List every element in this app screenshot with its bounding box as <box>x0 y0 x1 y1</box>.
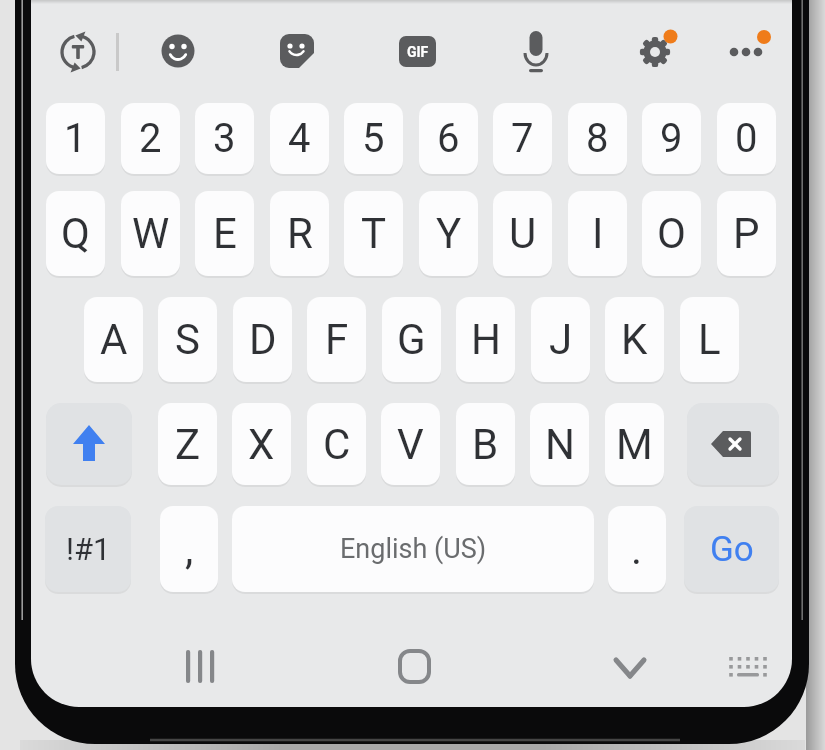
staticText: 1 <box>64 115 87 162</box>
button[interactable] <box>636 30 680 74</box>
button[interactable]: GIF <box>399 36 436 67</box>
staticText: 4 <box>288 115 311 162</box>
button[interactable]: !#1 <box>45 506 131 592</box>
button[interactable]: X <box>232 403 291 485</box>
staticText: GIF <box>407 44 429 60</box>
staticText: M <box>616 420 653 469</box>
button[interactable] <box>396 646 434 686</box>
staticText: G <box>397 315 426 364</box>
button[interactable]: 8 <box>568 103 627 174</box>
button[interactable] <box>687 403 779 485</box>
staticText: 8 <box>586 115 609 162</box>
button[interactable] <box>159 32 197 70</box>
staticText: W <box>132 209 170 258</box>
button[interactable]: . <box>608 506 666 592</box>
staticText: . <box>631 525 643 574</box>
button[interactable]: Q <box>46 191 105 276</box>
staticText: 2 <box>139 115 162 162</box>
button[interactable] <box>56 29 100 75</box>
staticText: B <box>472 420 499 469</box>
button[interactable]: P <box>717 191 776 276</box>
button[interactable] <box>46 403 132 485</box>
button[interactable]: Z <box>158 403 217 485</box>
staticText: V <box>397 420 424 469</box>
button[interactable]: I <box>568 191 627 276</box>
button[interactable]: N <box>530 403 589 485</box>
staticText: J <box>549 315 573 364</box>
button[interactable]: C <box>307 403 366 485</box>
staticText: 7 <box>511 115 534 162</box>
button[interactable]: J <box>531 297 590 382</box>
button[interactable]: K <box>605 297 664 382</box>
staticText: I <box>592 209 604 258</box>
button[interactable]: 2 <box>121 103 180 174</box>
staticText: P <box>733 209 760 258</box>
staticText: F <box>325 315 349 364</box>
staticText: Q <box>61 209 90 258</box>
button[interactable] <box>727 652 769 684</box>
staticText: 0 <box>735 115 758 162</box>
button[interactable] <box>724 28 774 74</box>
button[interactable]: F <box>307 297 366 382</box>
staticText: U <box>509 209 537 258</box>
staticText: C <box>323 420 351 469</box>
button[interactable]: E <box>195 191 254 276</box>
button[interactable]: 7 <box>493 103 552 174</box>
button[interactable]: , <box>160 506 218 592</box>
button[interactable]: B <box>456 403 515 485</box>
staticText: L <box>698 315 721 364</box>
staticText: Go <box>710 529 754 570</box>
button[interactable]: R <box>270 191 329 276</box>
button[interactable]: T <box>344 191 403 276</box>
staticText: S <box>175 315 200 364</box>
button[interactable]: 6 <box>419 103 478 174</box>
staticText: X <box>248 420 275 469</box>
button[interactable] <box>280 34 314 68</box>
button[interactable]: O <box>642 191 701 276</box>
button[interactable]: 5 <box>344 103 403 174</box>
button[interactable]: 3 <box>195 103 254 174</box>
button[interactable]: U <box>493 191 552 276</box>
button[interactable]: 1 <box>46 103 105 174</box>
staticText: !#1 <box>66 531 111 567</box>
staticText: English (US) <box>340 533 487 565</box>
button[interactable]: V <box>381 403 440 485</box>
staticText: 9 <box>660 115 683 162</box>
button[interactable] <box>180 644 222 688</box>
staticText: 3 <box>213 115 236 162</box>
staticText: H <box>471 315 501 364</box>
button[interactable]: H <box>456 297 515 382</box>
button[interactable]: Y <box>419 191 478 276</box>
button[interactable]: English (US) <box>232 506 594 592</box>
button[interactable]: L <box>680 297 739 382</box>
staticText: O <box>657 209 686 258</box>
button[interactable]: 9 <box>642 103 701 174</box>
staticText: Y <box>436 209 462 258</box>
button[interactable]: S <box>158 297 217 382</box>
staticText: 5 <box>362 115 385 162</box>
button[interactable]: 0 <box>717 103 776 174</box>
staticText: Z <box>175 420 201 469</box>
staticText: R <box>287 209 313 258</box>
staticText: E <box>213 209 237 258</box>
button[interactable]: D <box>233 297 292 382</box>
button[interactable]: A <box>84 297 143 382</box>
staticText: K <box>621 315 648 364</box>
button[interactable]: W <box>121 191 180 276</box>
staticText: A <box>100 315 128 364</box>
staticText: , <box>185 525 194 574</box>
button[interactable]: G <box>382 297 441 382</box>
button[interactable] <box>518 28 554 76</box>
button[interactable] <box>608 648 652 686</box>
button[interactable]: 4 <box>270 103 329 174</box>
button[interactable]: Go <box>684 506 779 592</box>
staticText: N <box>545 420 575 469</box>
staticText: 6 <box>437 115 460 162</box>
staticText: T <box>361 209 387 258</box>
staticText: D <box>249 315 277 364</box>
button[interactable]: M <box>605 403 664 485</box>
